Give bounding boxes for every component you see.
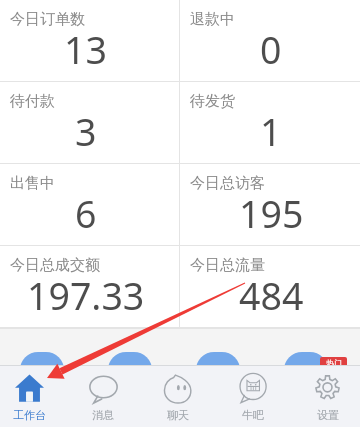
staticText: 牛吧 xyxy=(242,408,264,422)
button[interactable]: 牛吧 xyxy=(215,366,290,427)
staticText: 出售中 xyxy=(10,174,55,193)
button[interactable]: 今日订单数 xyxy=(0,0,179,81)
button[interactable]: Quick action xyxy=(20,352,64,365)
button[interactable]: 出售中 xyxy=(0,164,179,245)
staticText: 0 xyxy=(260,24,282,75)
staticText: 聊天 xyxy=(167,408,189,422)
button[interactable]: 退款中 xyxy=(180,0,360,81)
staticText: 待发货 xyxy=(190,92,235,111)
staticText: 今日总访客 xyxy=(190,174,265,193)
button[interactable]: Quick action xyxy=(108,352,152,365)
button[interactable]: 今日总流量 xyxy=(180,246,360,327)
staticText: 消息 xyxy=(92,408,114,422)
button[interactable]: 今日总访客 xyxy=(180,164,360,245)
staticText: 484 xyxy=(239,270,304,321)
button[interactable]: 今日总成交额 xyxy=(0,246,179,327)
button[interactable]: 工作台 xyxy=(0,366,66,427)
button[interactable]: 待付款 xyxy=(0,82,179,163)
staticText: 设置 xyxy=(317,408,339,422)
button[interactable]: Quick action xyxy=(284,352,328,365)
staticText: 195 xyxy=(239,188,304,239)
staticText: 3 xyxy=(75,106,97,157)
button[interactable]: 待发货 xyxy=(180,82,360,163)
staticText: 1 xyxy=(260,106,282,157)
staticText: 今日订单数 xyxy=(10,10,85,29)
staticText: 6 xyxy=(75,188,97,239)
button[interactable]: 消息 xyxy=(66,366,140,427)
staticText: 197.33 xyxy=(27,270,145,321)
staticText: 退款中 xyxy=(190,10,235,29)
button[interactable]: 聊天 xyxy=(140,366,215,427)
staticText: 热门 xyxy=(326,358,342,365)
staticText: 13 xyxy=(64,24,107,75)
button[interactable]: 设置 xyxy=(290,366,360,427)
staticText: 今日总成交额 xyxy=(10,256,100,275)
button[interactable]: Quick action xyxy=(196,352,240,365)
staticText: 工作台 xyxy=(13,408,46,422)
staticText: 今日总流量 xyxy=(190,256,265,275)
staticText: 待付款 xyxy=(10,92,55,111)
